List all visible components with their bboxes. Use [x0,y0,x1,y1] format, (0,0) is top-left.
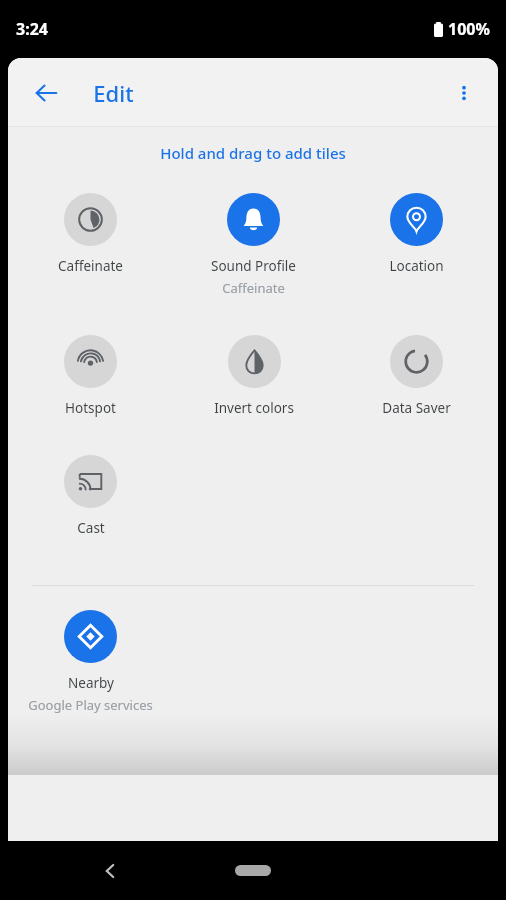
staticText: 3:24 [16,18,48,40]
button[interactable]: Nearby [24,610,157,714]
staticText: Caffeinate [222,279,285,297]
staticText: Google Play services [28,696,153,714]
button[interactable]: Invert colors [210,335,298,417]
button[interactable]: Back [86,847,134,895]
button[interactable]: Home [235,865,271,876]
button[interactable]: Sound Profile [207,193,300,297]
button[interactable]: Data Saver [378,335,455,417]
staticText: Hotspot [65,399,116,417]
staticText: Invert colors [214,399,294,417]
staticText: Edit [93,78,134,108]
staticText: Caffeinate [58,257,123,275]
button[interactable]: Back [24,71,68,115]
staticText: 100% [448,18,490,40]
staticText: Location [389,257,444,275]
button[interactable]: More options [442,71,486,115]
button[interactable]: Caffeinate [54,193,127,275]
button[interactable]: Location [385,193,448,275]
staticText: Data Saver [382,399,451,417]
staticText: Nearby [68,674,114,692]
button[interactable]: Cast [60,455,121,537]
button[interactable]: Hotspot [60,335,121,417]
staticText: Hold and drag to add tiles [160,143,346,163]
staticText: Cast [77,519,105,537]
staticText: Sound Profile [211,257,296,275]
